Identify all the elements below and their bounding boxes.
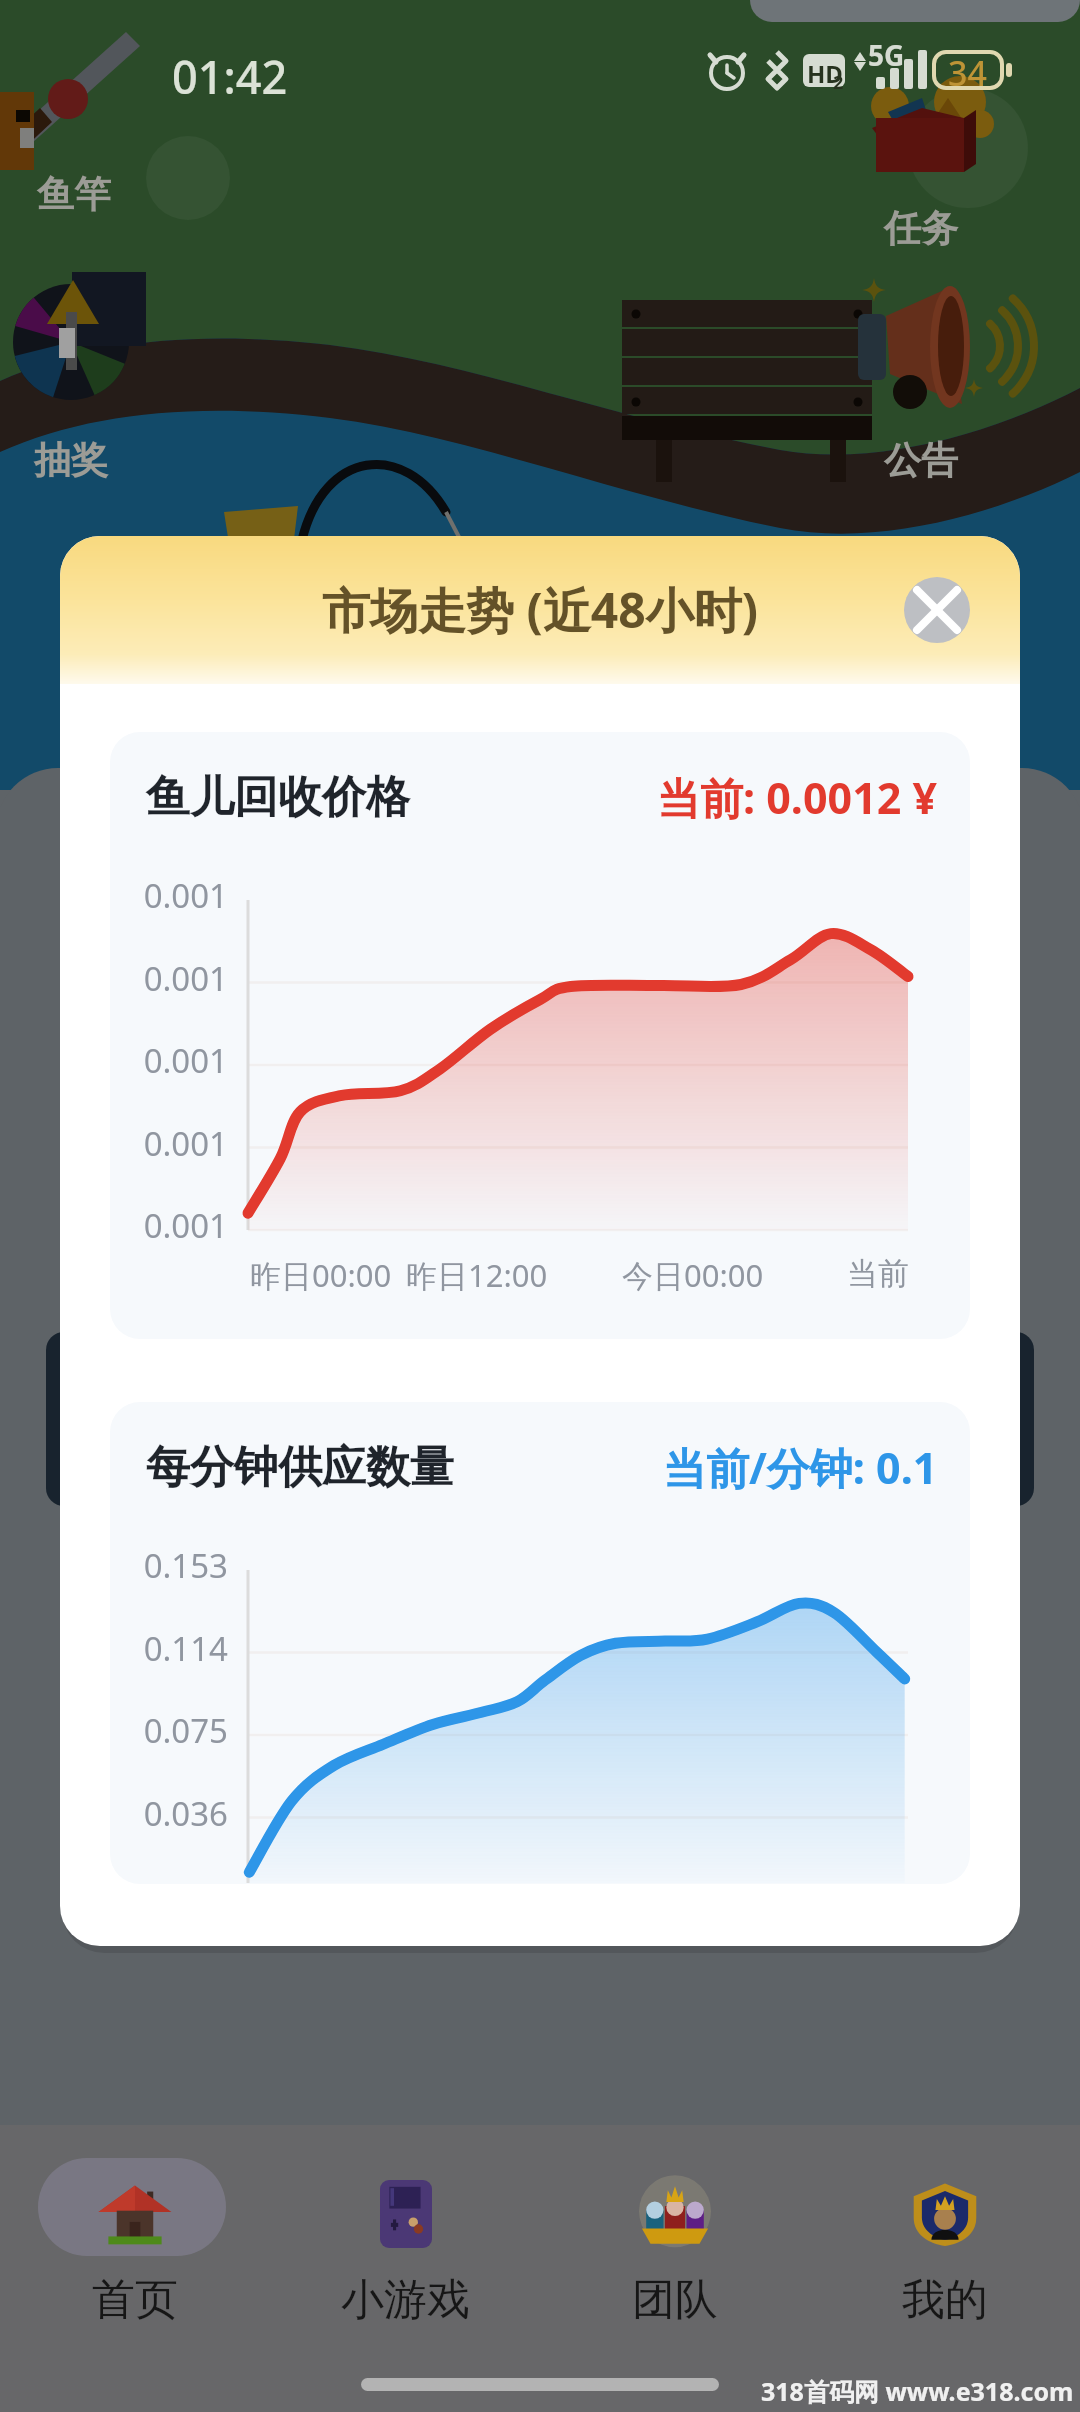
staticText: 318首码网 www.e318.com [761,2374,1074,2408]
staticText: 34 [948,50,987,96]
staticText: 01:42 [172,46,288,107]
staticText: 当前: 0.0012 ¥ [657,768,938,827]
staticText: 昨日12:00 [406,1254,548,1296]
button[interactable]: 鱼儿回收价格 [110,732,970,1339]
button[interactable]: 公告 [858,309,986,489]
staticText: 0.036 [143,1791,228,1836]
staticText: 公告 [884,437,958,484]
staticText: 0.001 [143,956,228,1001]
staticText: 0.153 [143,1543,228,1588]
button[interactable]: 抽奖 [8,309,136,489]
button[interactable]: 鱼竿 [11,43,139,223]
staticText: 2 [833,70,844,95]
button[interactable]: 首页 [25,2155,245,2345]
button[interactable]: 我的 [835,2155,1055,2345]
staticText: 0.001 [143,1038,228,1083]
staticText: 当前 [847,1254,909,1293]
staticText: 0.001 [143,873,228,918]
staticText: 今日00:00 [622,1254,764,1296]
staticText: 0.001 [143,1121,228,1166]
staticText: 团队 [632,2273,718,2327]
staticText: 市场走势 (近48小时) [322,577,758,643]
staticText: 我的 [902,2273,988,2327]
staticText: 当前/分钟: 0.1 [663,1438,938,1497]
button[interactable]: 小游戏 [295,2155,515,2345]
staticText: 小游戏 [341,2273,470,2327]
staticText: HD [807,57,843,90]
staticText: 5G [868,36,905,74]
button[interactable]: 团队 [565,2155,785,2345]
staticText: 0.001 [143,1203,228,1248]
staticText: 0.075 [143,1708,228,1753]
button[interactable]: Close [904,577,970,643]
staticText: 0.114 [143,1626,228,1671]
staticText: 鱼竿 [37,171,111,218]
staticText: 抽奖 [34,437,108,484]
staticText: 首页 [92,2273,178,2327]
staticText: 鱼儿回收价格 [146,770,410,825]
button[interactable]: 每分钟供应数量 [110,1402,970,1884]
staticText: 昨日00:00 [250,1254,392,1296]
staticText: 每分钟供应数量 [146,1440,454,1495]
button[interactable]: 任务 [858,77,986,257]
staticText: 任务 [884,205,958,252]
